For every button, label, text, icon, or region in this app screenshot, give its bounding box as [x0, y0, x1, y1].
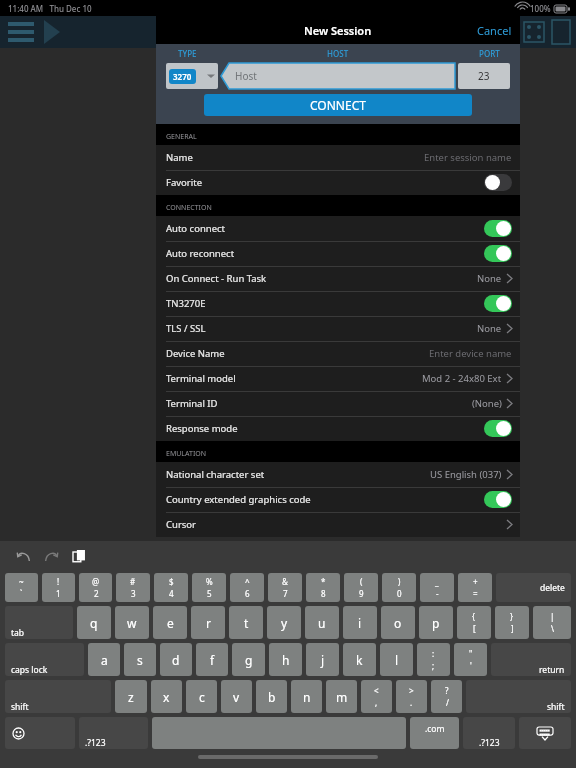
staticText: $: [169, 576, 174, 587]
button[interactable]: shift: [5, 680, 111, 713]
button[interactable]: *: [306, 573, 340, 602]
button[interactable]: z: [115, 680, 147, 713]
button[interactable]: On: [484, 295, 512, 312]
button[interactable]: 3270: [166, 63, 218, 89]
button[interactable]: {: [457, 606, 491, 639]
button[interactable]: Auto connect: [156, 216, 520, 241]
button[interactable]: ?: [431, 680, 462, 713]
button[interactable]: u: [305, 606, 339, 639]
button[interactable]: Off: [484, 174, 512, 191]
button[interactable]: TLS / SSL: [156, 316, 520, 341]
button[interactable]: r: [191, 606, 225, 639]
staticText: New Session: [304, 23, 372, 38]
staticText: d: [172, 652, 180, 668]
button[interactable]: Hide keyboard: [519, 717, 571, 749]
button[interactable]: !: [42, 573, 75, 602]
button[interactable]: On Connect - Run Task: [156, 266, 520, 291]
button[interactable]: Device Name: [156, 341, 520, 366]
button[interactable]: j: [306, 643, 339, 676]
button[interactable]: d: [160, 643, 192, 676]
button[interactable]: Auto reconnect: [156, 241, 520, 266]
button[interactable]: ^: [230, 573, 264, 602]
button[interactable]: }: [495, 606, 529, 639]
staticText: g: [245, 652, 253, 668]
button[interactable]: :: [417, 643, 450, 676]
button[interactable]: e: [153, 606, 187, 639]
button[interactable]: y: [267, 606, 301, 639]
staticText: Favorite: [166, 176, 202, 189]
button[interactable]: 23: [458, 63, 510, 89]
button[interactable]: Cancel: [469, 19, 520, 42]
staticText: 9: [359, 588, 364, 599]
button[interactable]: Cursor: [156, 512, 520, 537]
button[interactable]: On: [484, 491, 512, 508]
button[interactable]: .?123: [463, 717, 515, 749]
button[interactable]: p: [419, 606, 453, 639]
button[interactable]: $: [154, 573, 188, 602]
button[interactable]: _: [420, 573, 454, 602]
button[interactable]: @: [79, 573, 112, 602]
button[interactable]: l: [380, 643, 413, 676]
staticText: x: [163, 689, 170, 705]
button[interactable]: Undo: [12, 545, 34, 567]
button[interactable]: b: [256, 680, 287, 713]
button[interactable]: %: [192, 573, 226, 602]
button[interactable]: h: [269, 643, 302, 676]
button[interactable]: Terminal model: [156, 366, 520, 391]
button[interactable]: o: [381, 606, 415, 639]
button[interactable]: Paste: [68, 545, 90, 567]
button[interactable]: shift: [466, 680, 571, 713]
button[interactable]: |: [533, 606, 571, 639]
button[interactable]: x: [151, 680, 182, 713]
button[interactable]: return: [491, 643, 571, 676]
staticText: Cancel: [477, 23, 512, 38]
button[interactable]: Favorite: [156, 170, 520, 195]
button[interactable]: Name: [156, 145, 520, 170]
button[interactable]: TN3270E: [156, 291, 520, 316]
button[interactable]: >: [396, 680, 427, 713]
button[interactable]: s: [124, 643, 156, 676]
button[interactable]: c: [186, 680, 217, 713]
button[interactable]: .com: [410, 717, 459, 749]
button[interactable]: Terminal ID: [156, 391, 520, 416]
button[interactable]: (: [344, 573, 378, 602]
button[interactable]: n: [291, 680, 322, 713]
button[interactable]: m: [326, 680, 357, 713]
staticText: Device Name: [166, 347, 225, 360]
staticText: !: [57, 576, 60, 587]
staticText: >: [409, 685, 414, 696]
button[interactable]: Country extended graphics code: [156, 487, 520, 512]
button[interactable]: .?123: [79, 717, 148, 749]
button[interactable]: tab: [5, 606, 73, 639]
button[interactable]: w: [115, 606, 149, 639]
button[interactable]: <: [361, 680, 392, 713]
button[interactable]: Redo: [40, 545, 62, 567]
button[interactable]: a: [88, 643, 120, 676]
button[interactable]: ): [382, 573, 416, 602]
button[interactable]: +: [458, 573, 492, 602]
button[interactable]: On: [484, 220, 512, 237]
button[interactable]: On: [484, 245, 512, 262]
button[interactable]: i: [343, 606, 377, 639]
button[interactable]: CONNECT: [204, 94, 472, 116]
button[interactable]: Response mode: [156, 416, 520, 441]
button[interactable]: National character set: [156, 462, 520, 487]
button[interactable]: g: [232, 643, 265, 676]
button[interactable]: t: [229, 606, 263, 639]
staticText: Enter session name: [424, 151, 512, 164]
button[interactable]: #: [116, 573, 150, 602]
button[interactable]: On: [484, 420, 512, 437]
button[interactable]: caps lock: [5, 643, 84, 676]
button[interactable]: Emoji: [5, 717, 75, 749]
button[interactable]: ": [454, 643, 487, 676]
button[interactable]: k: [343, 643, 376, 676]
button[interactable]: delete: [496, 573, 571, 602]
button[interactable]: q: [77, 606, 111, 639]
button[interactable]: ~: [5, 573, 38, 602]
button[interactable]: f: [196, 643, 228, 676]
staticText: TYPE: [178, 48, 197, 59]
button[interactable]: Host: [221, 63, 455, 89]
button[interactable]: v: [221, 680, 252, 713]
button[interactable]: &: [268, 573, 302, 602]
